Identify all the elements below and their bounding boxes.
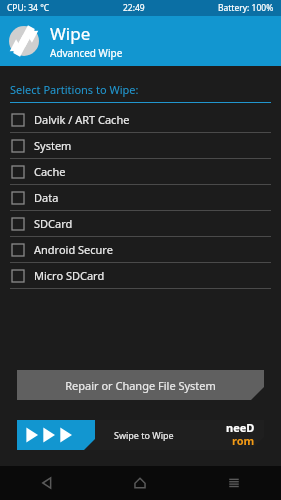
staticText: Wipe	[50, 22, 91, 45]
button[interactable]: Swipe to Wipe	[17, 420, 264, 450]
staticText: neeD	[226, 420, 255, 435]
button[interactable]: Dalvik / ART Cache	[0, 107, 281, 132]
staticText: Data	[34, 190, 59, 205]
button[interactable]: Home	[93, 466, 187, 500]
button[interactable]: Micro SDCard	[0, 263, 281, 288]
staticText: Select Partitions to Wipe:	[10, 82, 139, 97]
staticText: rom	[232, 433, 255, 448]
staticText: Battery: 100%	[218, 2, 274, 14]
staticText: Repair or Change File System	[65, 378, 216, 393]
staticText: Android Secure	[34, 242, 113, 257]
staticText: SDCard	[34, 216, 73, 231]
staticText: 22:49	[123, 2, 145, 14]
button[interactable]: SDCard	[0, 211, 281, 236]
staticText: Cache	[34, 164, 66, 179]
button[interactable]: Data	[0, 185, 281, 210]
button[interactable]: Cache	[0, 159, 281, 184]
button[interactable]: Menu	[187, 466, 281, 500]
staticText: Dalvik / ART Cache	[34, 112, 130, 127]
staticText: CPU: 34 °C	[7, 2, 50, 14]
staticText: Micro SDCard	[34, 268, 105, 283]
staticText: System	[34, 138, 72, 153]
button[interactable]: Android Secure	[0, 237, 281, 262]
staticText: Advanced Wipe	[50, 46, 123, 60]
other: Wipe	[9, 26, 39, 56]
button[interactable]: Repair or Change File System	[17, 370, 264, 400]
staticText: Swipe to Wipe	[114, 429, 174, 441]
button[interactable]: Back	[0, 466, 93, 500]
button[interactable]: System	[0, 133, 281, 158]
